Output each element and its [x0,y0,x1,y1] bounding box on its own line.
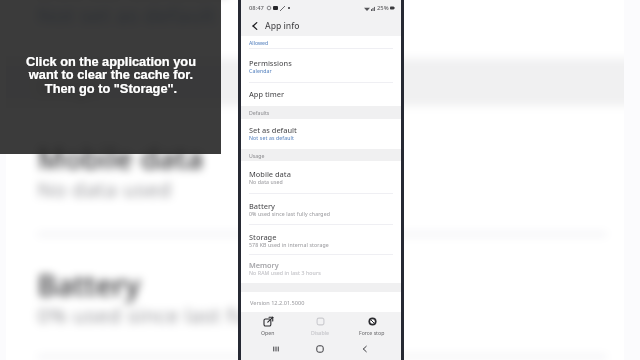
button[interactable]: Recents [265,338,287,360]
button[interactable]: Open [248,312,288,338]
staticText: Open [261,329,275,336]
staticText: 25% [377,4,389,12]
button[interactable]: Force stop [352,312,392,338]
staticText: Allowed [249,39,269,46]
button[interactable]: Home [309,338,331,360]
staticText: Mobile data [38,137,203,177]
staticText: Version 12.2.01.5000 [250,299,305,307]
staticText: Usage [249,152,265,159]
button[interactable]: Memory [241,255,401,285]
staticText: No RAM used in last 3 hours [249,269,321,276]
button[interactable]: Storage [6,359,624,360]
button[interactable]: Set as default [241,119,401,149]
staticText: Battery [38,264,140,303]
staticText: Set as default [249,125,297,135]
staticText: Permissions [249,58,292,68]
staticText: 0% used since last fully charged [38,299,361,327]
staticText: No data used [38,173,172,201]
staticText: App info [265,20,300,32]
staticText: Usage [38,70,101,98]
staticText: Force stop [359,329,385,336]
button[interactable]: Back [248,19,262,33]
button[interactable]: Mobile data [241,161,401,193]
button[interactable]: Set as default [6,0,624,58]
button[interactable]: App timer [241,83,401,106]
staticText: Not set as default [249,134,295,141]
staticText: 0% used since last fully charged [249,210,331,217]
staticText: No data used [249,178,283,185]
staticText: Storage [249,232,277,242]
staticText: Click on the application you want to cle… [26,54,196,96]
button[interactable]: Disable [300,312,340,338]
button[interactable]: Permissions [241,49,401,82]
staticText: 578 KB used in internal storage [249,241,329,248]
staticText: 08:47 [249,4,264,12]
button[interactable]: Mobile data [6,106,624,232]
staticText: Defaults [249,109,270,116]
staticText: Disable [311,329,329,336]
staticText: App timer [249,89,285,99]
staticText: Calendar [249,67,272,74]
button[interactable]: Back [354,338,376,360]
staticText: Set as default [38,0,227,3]
staticText: Battery [249,201,275,211]
staticText: Memory [249,260,279,270]
button[interactable]: Battery [6,236,624,355]
button[interactable]: Storage [241,225,401,254]
button[interactable]: Battery [241,194,401,224]
staticText: Mobile data [249,169,291,179]
